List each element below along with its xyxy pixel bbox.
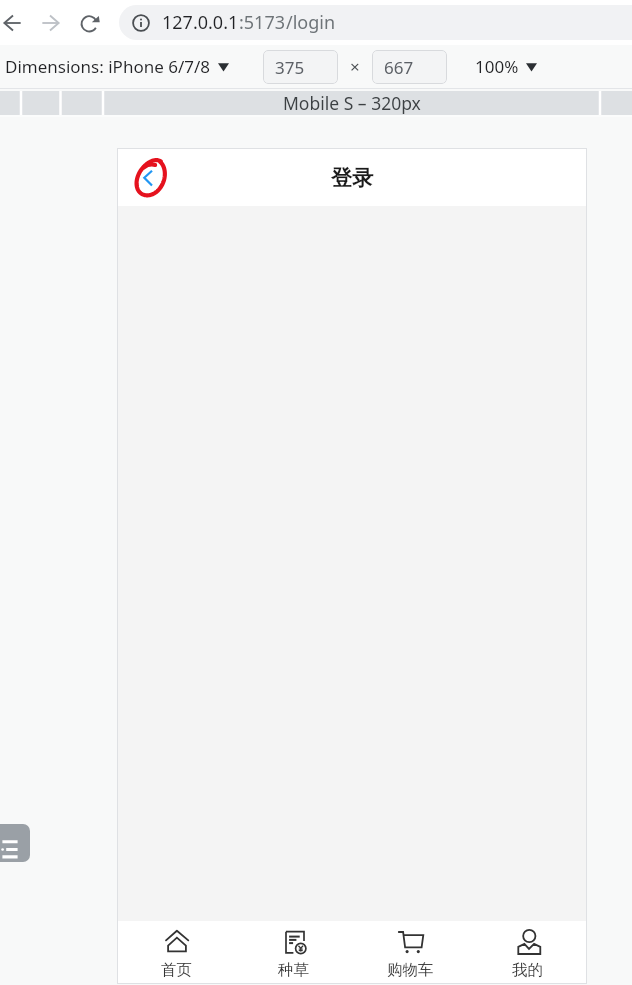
button[interactable]: 我的 <box>469 921 586 983</box>
staticText: /login <box>286 10 336 35</box>
button[interactable]: 首页 <box>118 921 235 983</box>
button[interactable]: 购物车 <box>352 921 469 983</box>
staticText: :5173 <box>239 10 286 35</box>
staticText: 登录 <box>331 165 373 191</box>
button[interactable]: 种草 <box>235 921 352 983</box>
staticText: Dimensions: iPhone 6/7/8 <box>5 55 211 78</box>
button[interactable]: 375 <box>263 50 338 84</box>
staticText: Mobile S – 320px <box>283 91 421 115</box>
button[interactable]: Back <box>0 4 31 42</box>
button[interactable]: 667 <box>372 50 447 84</box>
button[interactable]: Forward <box>31 4 69 42</box>
button[interactable]: Show console drawer <box>0 824 30 862</box>
staticText: 100% <box>475 55 519 78</box>
staticText: × <box>350 55 360 78</box>
button[interactable]: Back <box>124 158 166 198</box>
button[interactable]: 100% <box>473 55 539 78</box>
staticText: 667 <box>384 56 414 79</box>
button[interactable]: Dimensions: iPhone 6/7/8 <box>3 55 231 78</box>
staticText: 375 <box>275 56 305 79</box>
button[interactable]: Reload <box>72 4 110 42</box>
staticText: 购物车 <box>387 960 434 980</box>
staticText: 种草 <box>278 960 309 980</box>
staticText: 首页 <box>161 960 192 980</box>
staticText: 我的 <box>512 960 543 980</box>
staticText: 127.0.0.1 <box>162 10 239 35</box>
button[interactable]: 127.0.0.1 <box>119 5 632 40</box>
